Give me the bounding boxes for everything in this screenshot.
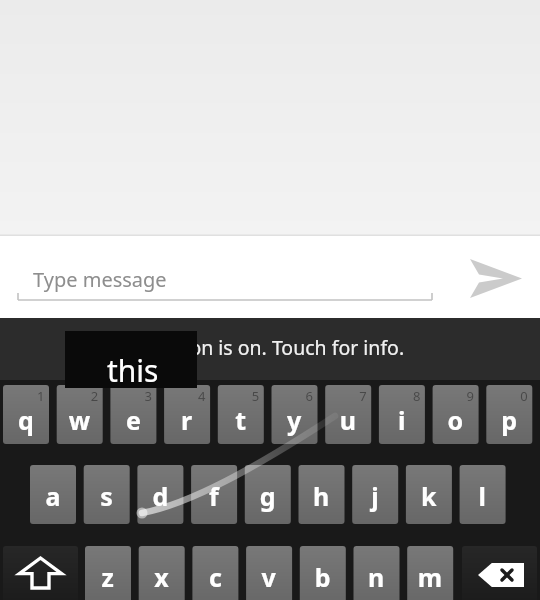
button[interactable]: x	[139, 546, 185, 600]
button[interactable]: p	[486, 385, 532, 444]
button[interactable]: j	[352, 465, 398, 524]
button[interactable]: Shift	[3, 546, 78, 600]
button[interactable]: v	[246, 546, 292, 600]
button[interactable]: t	[218, 385, 264, 444]
button[interactable]: s	[84, 465, 130, 524]
button[interactable]: l	[460, 465, 506, 524]
button[interactable]: f	[191, 465, 237, 524]
button[interactable]: b	[300, 546, 346, 600]
button[interactable]: q	[3, 385, 49, 444]
button[interactable]: k	[406, 465, 452, 524]
button[interactable]: h	[299, 465, 345, 524]
button[interactable]: y	[272, 385, 318, 444]
button[interactable]: r	[164, 385, 210, 444]
button[interactable]: e	[110, 385, 156, 444]
button[interactable]: u	[325, 385, 371, 444]
button[interactable]: d	[137, 465, 183, 524]
button[interactable]: a	[30, 465, 76, 524]
button[interactable]: n	[354, 546, 400, 600]
button[interactable]: Backspace	[462, 546, 537, 600]
button[interactable]: i	[379, 385, 425, 444]
button[interactable]: Send	[455, 248, 540, 310]
button[interactable]	[16, 250, 436, 302]
button[interactable]: m	[407, 546, 453, 600]
button[interactable]: w	[57, 385, 103, 444]
button[interactable]: c	[192, 546, 238, 600]
button[interactable]: Personalisation is on. Touch for info.	[0, 318, 540, 380]
button[interactable]: o	[433, 385, 479, 444]
button[interactable]: g	[245, 465, 291, 524]
button[interactable]: z	[85, 546, 131, 600]
